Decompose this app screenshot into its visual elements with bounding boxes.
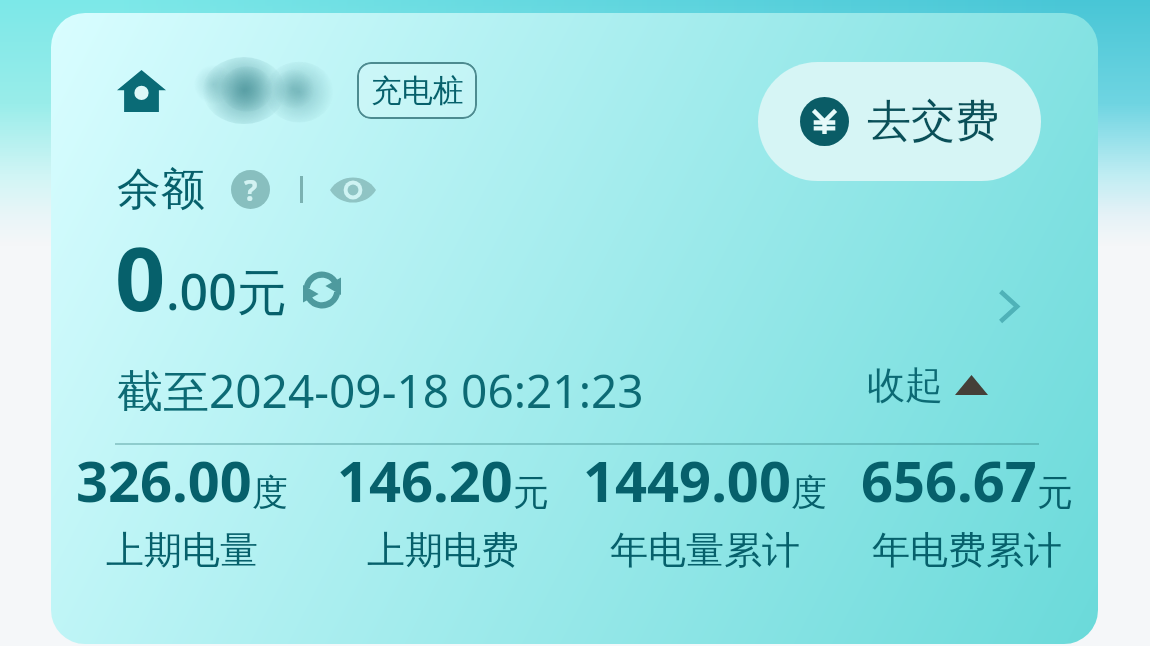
button[interactable]: Home: [51, 13, 1098, 644]
button[interactable]: Balance help: [231, 170, 270, 209]
button[interactable]: 1449.00: [574, 442, 836, 574]
button[interactable]: 去交费: [758, 62, 1041, 181]
button[interactable]: 326.00: [51, 442, 312, 574]
staticText: 656.67: [861, 442, 1037, 518]
staticText: 326.00: [76, 442, 252, 518]
staticText: 充电桩: [371, 71, 464, 110]
staticText: 收起: [867, 361, 943, 409]
staticText: 元: [1037, 470, 1073, 515]
button[interactable]: 收起: [867, 361, 988, 409]
staticText: 余额: [117, 162, 205, 217]
staticText: 0: [115, 217, 166, 317]
staticText: 年电量累计: [610, 526, 800, 574]
staticText: 去交费: [867, 94, 999, 149]
staticText: .00元: [166, 257, 287, 325]
staticText: 度: [791, 470, 827, 515]
button[interactable]: 656.67: [836, 442, 1098, 574]
staticText: 146.20: [337, 442, 513, 518]
staticText: 元: [513, 470, 549, 515]
button[interactable]: Home: [117, 70, 166, 112]
button[interactable]: 146.20: [312, 442, 574, 574]
button[interactable]: Toggle balance visibility: [330, 176, 376, 204]
button[interactable]: Balance details: [1000, 293, 1019, 320]
staticText: 截至2024-09-18 06:21:23: [117, 359, 644, 411]
staticText: ?: [244, 171, 258, 209]
staticText: 年电费累计: [872, 526, 1062, 574]
button[interactable]: Refresh balance: [302, 270, 342, 310]
button[interactable]: 充电桩: [357, 62, 477, 119]
staticText: 1449.00: [583, 442, 791, 518]
staticText: 上期电量: [106, 526, 258, 574]
staticText: 上期电费: [367, 526, 519, 574]
staticText: 度: [252, 470, 288, 515]
